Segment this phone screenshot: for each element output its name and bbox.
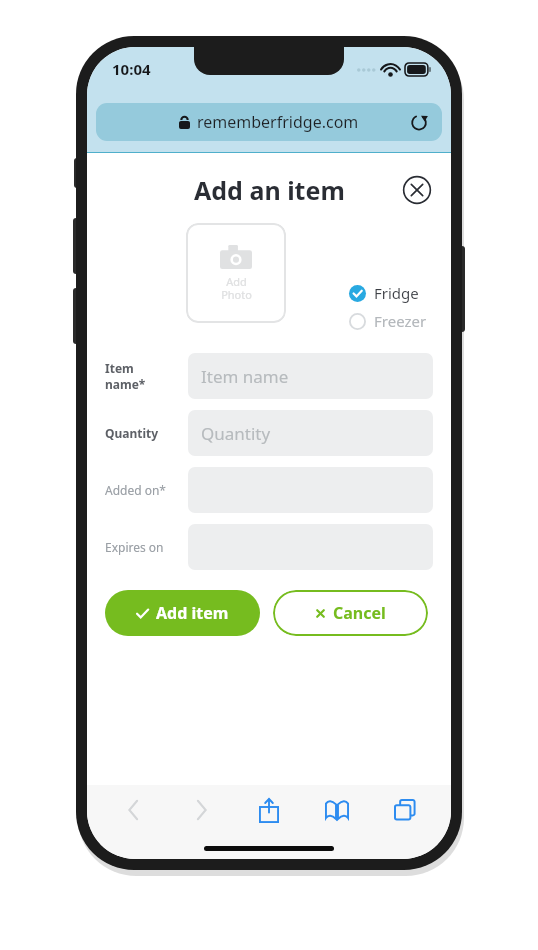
button[interactable]: Reload (406, 109, 432, 135)
staticText: Fridge (374, 283, 419, 303)
staticText: Quantity (105, 425, 159, 441)
button[interactable]: Share (247, 788, 291, 832)
button[interactable]: rememberfridge.com (96, 103, 442, 141)
button[interactable]: Close (401, 174, 433, 206)
staticText: 10:04 (112, 59, 151, 79)
button[interactable]: Forward (179, 788, 223, 832)
button[interactable]: Fridge (349, 281, 419, 305)
staticText: Added on* (105, 482, 166, 498)
button[interactable]: Cancel (273, 590, 428, 636)
button[interactable]: Quantity (188, 410, 433, 456)
staticText: Add item (156, 602, 229, 624)
staticText: Item name* (105, 360, 170, 392)
button[interactable]: Back (111, 788, 155, 832)
staticText: Add Photo (221, 274, 252, 302)
staticText: rememberfridge.com (197, 111, 359, 133)
staticText: Freezer (374, 311, 427, 331)
button[interactable]: Add Photo (186, 223, 286, 323)
staticText: Quantity (201, 422, 271, 445)
button[interactable]: Add item (105, 590, 260, 636)
staticText: Expires on (105, 539, 164, 555)
staticText: Item name (201, 365, 289, 388)
button[interactable]: Item name (188, 353, 433, 399)
button[interactable]: Bookmarks (315, 788, 359, 832)
button[interactable]: Tabs (383, 788, 427, 832)
staticText: Add an item (194, 173, 345, 207)
staticText: Cancel (333, 602, 386, 624)
button[interactable]: Freezer (349, 309, 427, 333)
